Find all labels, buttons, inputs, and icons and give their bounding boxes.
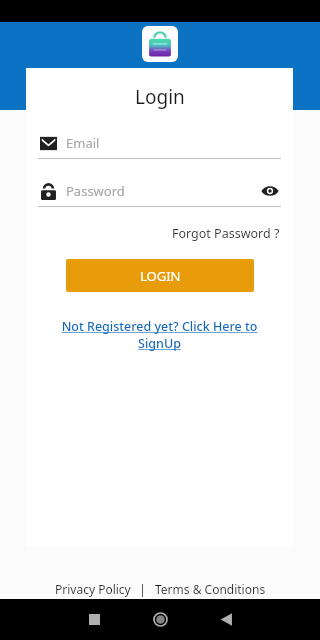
staticText: Email <box>66 134 100 152</box>
button[interactable]: Back <box>203 599 249 640</box>
staticText: Forgot Password ? <box>172 225 280 242</box>
staticText: Privacy Policy <box>55 581 131 597</box>
button[interactable]: Privacy Policy <box>53 578 133 600</box>
staticText: Terms & Conditions <box>155 581 266 597</box>
button[interactable]: Show password <box>259 180 281 202</box>
staticText: Password <box>66 182 125 200</box>
staticText: Not Registered yet? Click Here to SignUp <box>56 318 263 352</box>
button[interactable]: Recent apps <box>71 599 117 640</box>
button[interactable]: Forgot Password ? <box>172 223 293 244</box>
button[interactable]: Password <box>38 178 281 204</box>
button[interactable]: Terms & Conditions <box>153 578 268 600</box>
staticText: | <box>133 581 153 597</box>
button[interactable]: Email <box>38 130 281 156</box>
button[interactable]: LOGIN <box>66 259 254 292</box>
button[interactable]: Home <box>137 599 183 640</box>
staticText: LOGIN <box>140 267 181 285</box>
staticText: Login <box>135 84 185 110</box>
button[interactable]: Not Registered yet? Click Here to SignUp <box>26 316 293 354</box>
